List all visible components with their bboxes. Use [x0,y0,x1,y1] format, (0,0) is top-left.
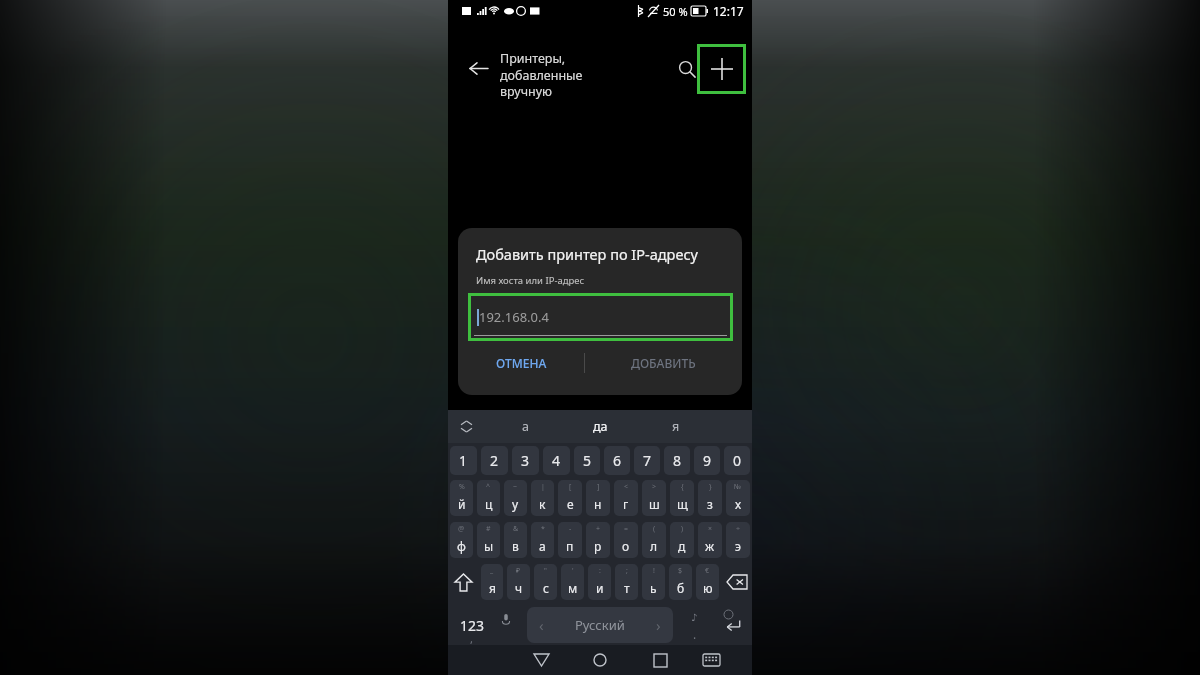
staticText: ж [705,538,715,554]
staticText: э [735,538,741,554]
button[interactable]: | [531,480,554,516]
staticText: { [681,482,684,492]
staticText: > [652,482,657,492]
staticText: ~ [513,482,518,492]
staticText: й [458,496,466,512]
button[interactable]: ÷ [726,522,750,558]
button[interactable]: Home [579,645,621,675]
staticText: ; [626,566,628,576]
button[interactable]: { [670,480,694,516]
button[interactable]: ' [561,564,584,600]
button[interactable]: ₽ [507,564,530,600]
staticText: ] [597,482,600,492]
button[interactable]: 9 [694,446,720,475]
staticText: ) [681,524,684,534]
button[interactable]: } [698,480,722,516]
staticText: в [512,538,519,554]
staticText: ♪ [691,612,698,624]
button[interactable]: 8 [664,446,690,475]
button[interactable]: ОТМЕНА [458,345,584,381]
button[interactable]: Back [462,52,494,84]
staticText: о [622,538,630,554]
button[interactable]: 6 [604,446,630,475]
staticText: а [522,418,529,435]
button[interactable]: Hide keyboard [691,645,731,675]
staticText: я [672,418,680,435]
staticText: щ [677,496,688,512]
button[interactable]: ДОБАВИТЬ [585,345,742,381]
staticText: ДОБАВИТЬ [631,355,696,371]
button[interactable]: % [450,480,473,516]
button[interactable]: € [696,564,719,600]
button[interactable]: @ [450,522,473,558]
button[interactable]: 0 [724,446,750,475]
staticText: ф [457,538,466,554]
button[interactable]: 4 [543,446,570,475]
button[interactable]: Backspace [721,562,752,602]
staticText: 8 [673,451,682,470]
button[interactable]: 7 [634,446,660,475]
button[interactable]: Shift [448,562,479,602]
button[interactable]: 5 [574,446,600,475]
staticText: 1 [459,451,468,470]
button[interactable]: а [488,410,563,443]
button[interactable]: Search [670,52,704,86]
staticText: ш [649,496,660,512]
staticText: Добавить принтер по IP-адресу [476,244,698,264]
button[interactable]: я [638,410,713,443]
staticText: # [486,524,491,534]
staticText: г [623,496,629,512]
button[interactable]: 192.168.0.4 [468,293,733,341]
button[interactable]: 123 [452,604,492,646]
button[interactable]: ] [586,480,610,516]
button[interactable]: 2 [481,446,508,475]
button[interactable]: Recents [640,645,680,675]
button[interactable]: ! [642,564,665,600]
button[interactable]: 1 [450,446,477,475]
button[interactable]: ) [670,522,694,558]
staticText: 2 [490,451,499,470]
button[interactable]: = [614,522,638,558]
staticText: 50 % [663,4,688,19]
button[interactable]: & [504,522,527,558]
button[interactable]: ^ [477,480,500,516]
button[interactable]: Русский [527,607,673,643]
staticText: ^ [486,482,491,492]
button[interactable]: № [726,480,750,516]
staticText: н [594,496,602,512]
button[interactable]: ~ [504,480,527,516]
staticText: ь [650,580,657,596]
button[interactable]: " [534,564,557,600]
button[interactable]: ; [615,564,638,600]
staticText: м [568,580,578,596]
button[interactable]: ( [642,522,666,558]
staticText: @ [458,524,465,534]
button[interactable]: Back [521,645,561,675]
button[interactable]: - [558,522,582,558]
button[interactable]: 3 [512,446,539,475]
staticText: . [693,626,697,642]
button[interactable]: [ [558,480,582,516]
button[interactable]: * [531,522,554,558]
button[interactable]: + [586,522,610,558]
button[interactable]: > [642,480,666,516]
staticText: ! [653,566,655,576]
button[interactable]: $ [669,564,692,600]
staticText: + [596,524,601,534]
staticText: 0 [733,451,742,470]
button[interactable]: # [477,522,500,558]
staticText: › [656,615,661,635]
staticText: Русский [575,616,625,634]
button[interactable]: Enter [716,604,750,646]
staticText: 6 [613,451,622,470]
button[interactable]: _ [481,564,503,600]
staticText: ÷ [736,524,741,534]
staticText: 4 [552,451,561,470]
button[interactable]: : [588,564,611,600]
staticText: я [489,580,496,596]
button[interactable]: < [614,480,638,516]
button[interactable]: × [698,522,722,558]
button[interactable]: да [563,410,638,443]
button[interactable]: Add printer [697,44,746,94]
staticText: и [596,580,604,596]
